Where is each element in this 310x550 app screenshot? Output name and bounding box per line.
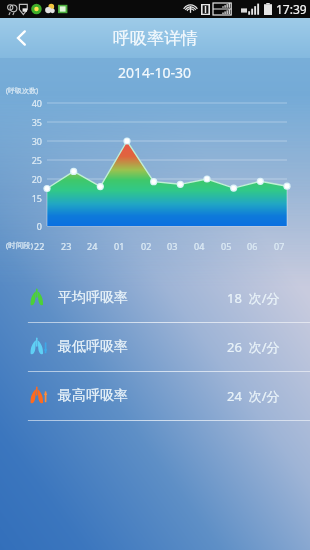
staticText: 15 bbox=[31, 192, 42, 204]
staticText: 35 bbox=[31, 116, 42, 128]
staticText: 最高呼吸率 bbox=[58, 387, 128, 405]
staticText: 24 bbox=[87, 240, 98, 252]
staticText: 最低呼吸率 bbox=[58, 338, 128, 356]
staticText: 30 bbox=[31, 135, 42, 147]
staticText: 18 次/分 bbox=[227, 289, 280, 307]
staticText: 26 次/分 bbox=[227, 338, 280, 356]
staticText: 01 bbox=[114, 240, 125, 252]
button[interactable]: 最低呼吸率 bbox=[0, 323, 310, 371]
staticText: 24 次/分 bbox=[227, 387, 280, 405]
staticText: 25 bbox=[31, 154, 42, 166]
button[interactable]: 平均呼吸率 bbox=[0, 274, 310, 322]
staticText: 05 bbox=[221, 240, 232, 252]
staticText: 22 bbox=[34, 240, 45, 252]
staticText: 20 bbox=[31, 173, 42, 185]
staticText: (时间段) bbox=[6, 240, 33, 250]
staticText: 0 bbox=[36, 220, 42, 232]
staticText: 02 bbox=[141, 240, 152, 252]
staticText: 40 bbox=[31, 97, 42, 109]
button[interactable]: 最高呼吸率 bbox=[0, 372, 310, 420]
staticText: 03 bbox=[167, 240, 178, 252]
staticText: 04 bbox=[194, 240, 205, 252]
staticText: (呼吸次数) bbox=[6, 86, 39, 96]
staticText: 17:39 bbox=[276, 1, 307, 17]
staticText: 06 bbox=[247, 240, 258, 252]
staticText: 2014-10-30 bbox=[118, 63, 192, 82]
staticText: 呼吸率详情 bbox=[113, 28, 198, 49]
button[interactable]: Back bbox=[0, 18, 44, 58]
staticText: 平均呼吸率 bbox=[58, 289, 128, 307]
staticText: 23 bbox=[61, 240, 72, 252]
staticText: 07 bbox=[274, 240, 285, 252]
